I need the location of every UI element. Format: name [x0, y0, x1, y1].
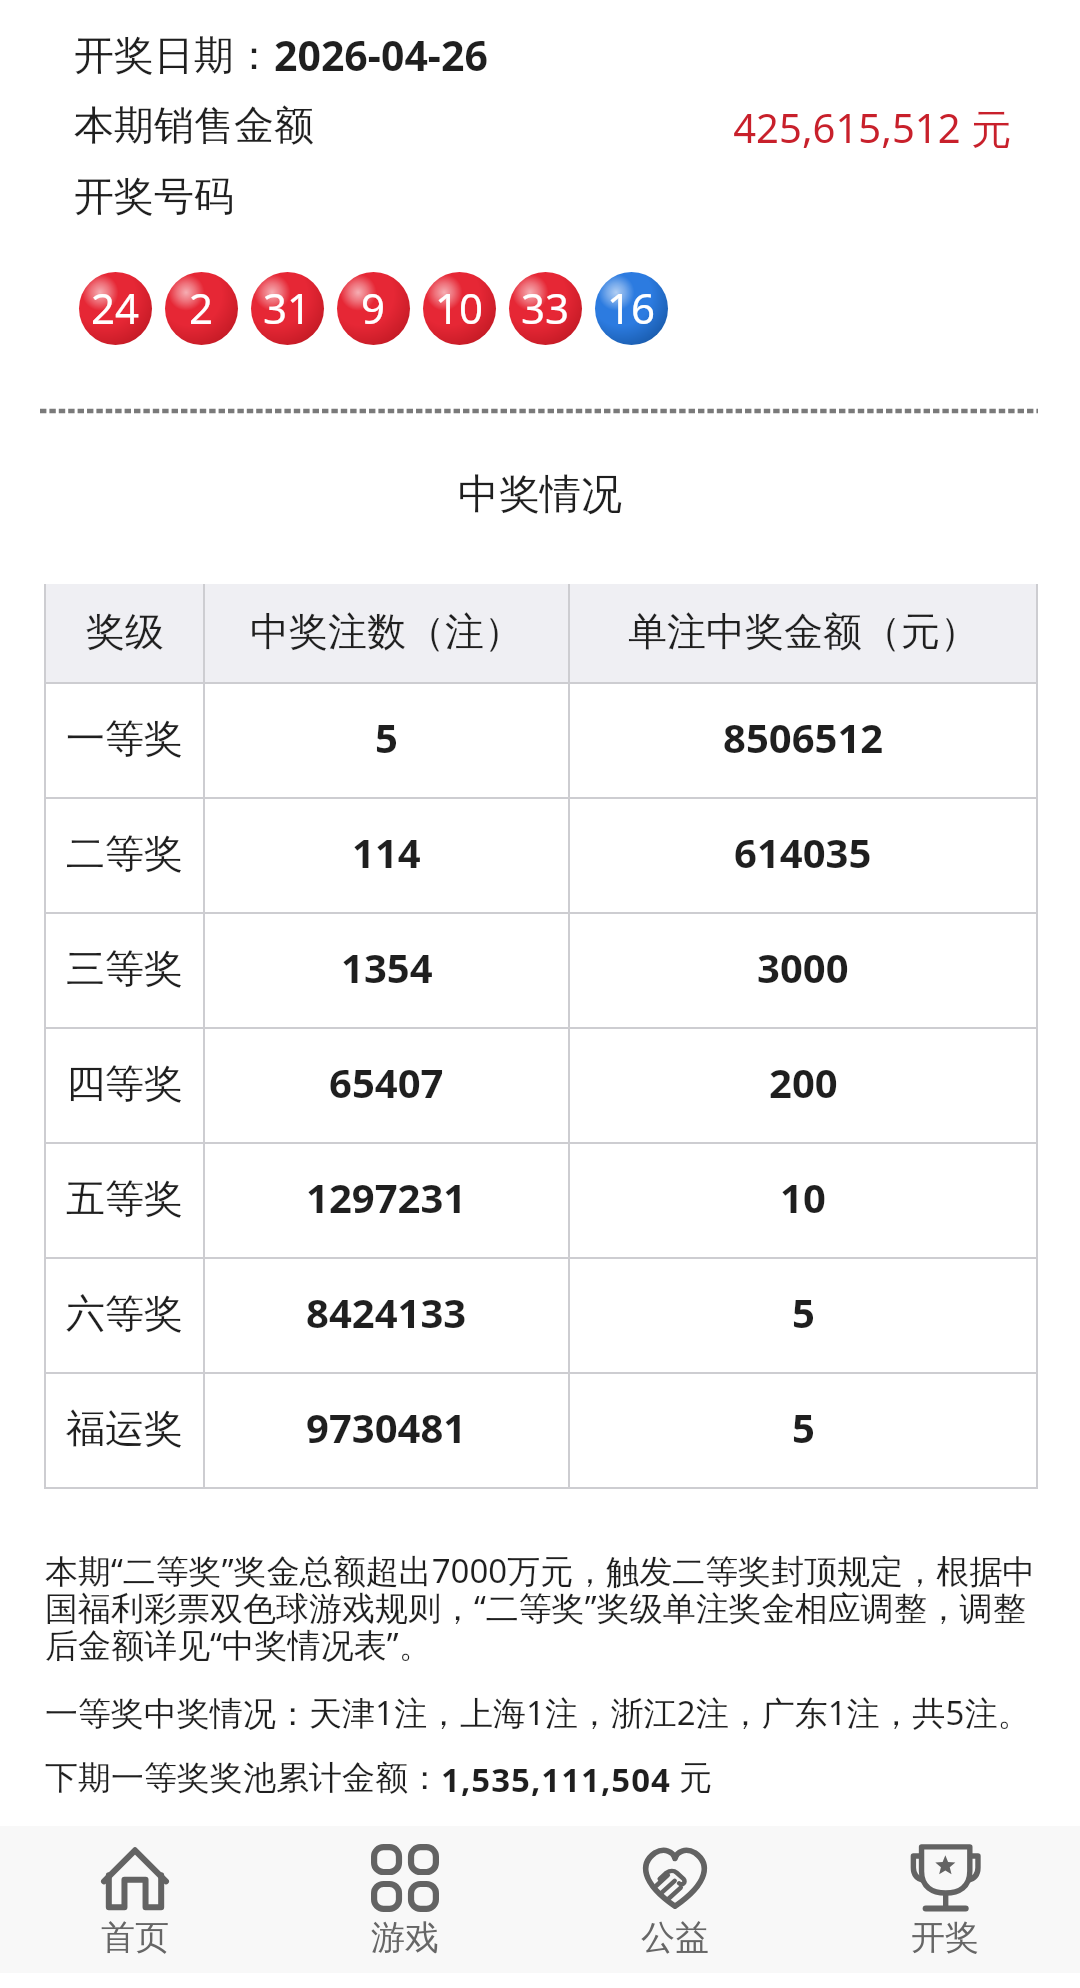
- staticText: 本期“二等奖”奖金总额超出7000万元，触发二等奖封顶规定，根据中国福利彩票双色…: [45, 1548, 1039, 1667]
- staticText: 200: [769, 1055, 838, 1109]
- staticText: 公益: [641, 1916, 709, 1959]
- staticText: 8424133: [306, 1285, 467, 1339]
- staticText: 16: [607, 279, 656, 336]
- staticText: 福运奖: [66, 1404, 183, 1453]
- staticText: 首页: [101, 1916, 169, 1959]
- staticText: 六等奖: [66, 1289, 183, 1338]
- staticText: 425,615,512 元: [0, 100, 1011, 155]
- staticText: 10: [435, 279, 484, 336]
- staticText: 114: [352, 825, 421, 879]
- staticText: 8506512: [723, 710, 884, 764]
- staticText: 二等奖: [66, 829, 183, 878]
- staticText: 2: [189, 279, 214, 336]
- staticText: 单注中奖金额（元）: [628, 607, 979, 656]
- staticText: 614035: [734, 825, 872, 879]
- staticText: 中奖注数（注）: [250, 607, 523, 656]
- staticText: 3000: [757, 940, 849, 994]
- staticText: 5: [375, 710, 398, 764]
- staticText: 9730481: [306, 1400, 467, 1454]
- button[interactable]: 公益: [540, 1826, 810, 1973]
- staticText: 开奖号码: [74, 171, 234, 221]
- staticText: 1354: [341, 940, 433, 994]
- staticText: 33: [521, 279, 570, 336]
- staticText: 四等奖: [66, 1059, 183, 1108]
- staticText: 2026-04-26: [274, 27, 488, 83]
- button[interactable]: 游戏: [270, 1826, 540, 1973]
- staticText: 开奖日期：: [74, 30, 274, 80]
- staticText: 元: [679, 1757, 712, 1799]
- staticText: 1297231: [306, 1170, 467, 1224]
- staticText: 本期销售金额: [74, 100, 314, 150]
- staticText: 五等奖: [66, 1174, 183, 1223]
- staticText: 31: [263, 279, 312, 336]
- staticText: 5: [792, 1400, 815, 1454]
- staticText: 一等奖: [66, 714, 183, 763]
- staticText: 65407: [329, 1055, 444, 1109]
- staticText: 下期一等奖奖池累计金额：: [45, 1757, 441, 1799]
- staticText: 游戏: [371, 1916, 439, 1959]
- staticText: 中奖情况: [0, 469, 1080, 521]
- staticText: 10: [780, 1170, 826, 1224]
- button[interactable]: 开奖: [810, 1826, 1080, 1973]
- staticText: 三等奖: [66, 944, 183, 993]
- staticText: 开奖: [911, 1916, 979, 1959]
- staticText: 24: [91, 279, 140, 336]
- staticText: 5: [792, 1285, 815, 1339]
- button[interactable]: 首页: [0, 1826, 270, 1973]
- staticText: 1,535,111,504: [441, 1757, 671, 1802]
- staticText: 9: [361, 279, 386, 336]
- staticText: 奖级: [86, 607, 164, 656]
- staticText: 一等奖中奖情况：天津1注，上海1注，浙江2注，广东1注，共5注。: [45, 1690, 1039, 1735]
